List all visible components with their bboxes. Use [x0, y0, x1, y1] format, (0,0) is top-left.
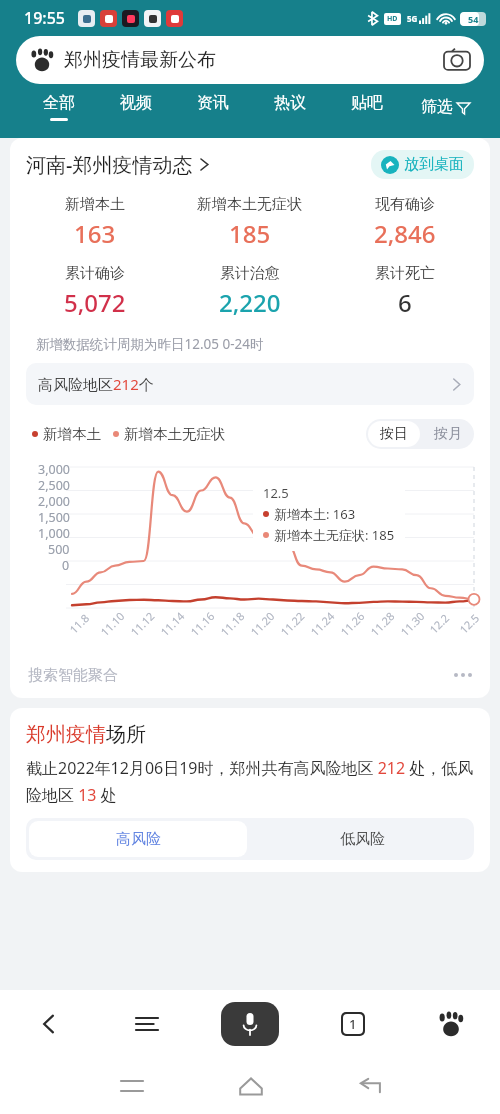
- staticText: 12.5: [263, 484, 289, 502]
- button[interactable]: Menu: [98, 990, 196, 1058]
- staticText: 11.22: [277, 608, 308, 639]
- staticText: 累计死亡: [375, 264, 435, 283]
- button[interactable]: 按日: [368, 421, 420, 447]
- button[interactable]: 新增本土无症状: [172, 195, 327, 250]
- staticText: 1,000: [38, 525, 70, 541]
- staticText: 6: [398, 286, 412, 319]
- button[interactable]: Recent apps: [72, 1058, 191, 1114]
- staticText: 11.16: [187, 608, 218, 639]
- staticText: 3,000: [38, 461, 70, 477]
- button[interactable]: 累计确诊: [18, 264, 172, 319]
- staticText: 筛选: [421, 97, 453, 117]
- staticText: 54: [468, 13, 479, 25]
- staticText: 资讯: [197, 93, 229, 113]
- staticText: 11.10: [97, 608, 128, 639]
- button[interactable]: 高风险地区212个: [26, 363, 474, 405]
- staticText: 163: [74, 217, 116, 250]
- staticText: 0: [62, 557, 70, 573]
- staticText: 新增本土: [43, 425, 101, 443]
- button[interactable]: 放到桌面: [371, 150, 474, 179]
- button[interactable]: 资讯: [174, 84, 251, 130]
- staticText: 高风险地区212个: [38, 374, 451, 394]
- staticText: 12.2: [426, 610, 452, 637]
- button[interactable]: 贴吧: [328, 84, 405, 130]
- staticText: 河南-郑州疫情动态: [26, 151, 193, 178]
- staticText: 2,846: [374, 217, 436, 250]
- staticText: 12.5: [456, 610, 482, 637]
- staticText: 累计确诊: [65, 264, 125, 283]
- staticText: 新增本土: 163: [274, 505, 356, 523]
- button[interactable]: Baidu home: [402, 990, 500, 1058]
- button[interactable]: 累计死亡: [327, 264, 482, 319]
- staticText: 低风险: [340, 830, 385, 849]
- button[interactable]: 现有确诊: [327, 195, 482, 250]
- staticText: 11.18: [217, 608, 248, 639]
- staticText: 5G: [407, 13, 418, 24]
- staticText: 11.26: [337, 608, 368, 639]
- button[interactable]: 搜索智能聚合: [28, 652, 472, 698]
- button[interactable]: 视频: [97, 84, 174, 130]
- staticText: 累计治愈: [220, 264, 280, 283]
- button[interactable]: 累计治愈: [172, 264, 327, 319]
- staticText: 全部: [43, 93, 75, 113]
- staticText: 500: [48, 541, 70, 557]
- staticText: 新增本土无症状: [197, 195, 302, 214]
- staticText: 5,072: [64, 286, 126, 319]
- staticText: 贴吧: [351, 93, 383, 113]
- staticText: 新增本土: [65, 195, 125, 214]
- button[interactable]: Tabs: [304, 990, 402, 1058]
- staticText: 2,220: [219, 286, 281, 319]
- staticText: 11.20: [247, 608, 278, 639]
- staticText: 11.28: [367, 608, 398, 639]
- button[interactable]: 全部: [20, 84, 97, 130]
- button[interactable]: 筛选: [405, 84, 486, 130]
- staticText: 热议: [274, 93, 306, 113]
- staticText: 新增本土无症状: 185: [274, 526, 395, 544]
- button[interactable]: 高风险: [29, 821, 247, 857]
- staticText: 11.14: [157, 608, 188, 639]
- staticText: 1,500: [38, 509, 70, 525]
- button[interactable]: Home: [191, 1058, 310, 1114]
- button[interactable]: Back: [310, 1058, 429, 1114]
- staticText: HD: [387, 14, 398, 24]
- staticText: 2,000: [38, 493, 70, 509]
- staticText: 1: [349, 1015, 357, 1033]
- button[interactable]: 热议: [251, 84, 328, 130]
- staticText: 11.24: [307, 608, 338, 639]
- staticText: 2,500: [38, 477, 70, 493]
- button[interactable]: 低风险: [250, 818, 474, 860]
- staticText: 按月: [434, 425, 462, 443]
- staticText: 放到桌面: [404, 155, 464, 174]
- staticText: 185: [229, 217, 271, 250]
- button[interactable]: Voice search: [221, 1002, 279, 1046]
- button[interactable]: Back: [0, 990, 98, 1058]
- staticText: 19:55: [24, 7, 65, 29]
- button[interactable]: 郑州疫情最新公布: [16, 36, 484, 84]
- staticText: 搜索智能聚合: [28, 666, 454, 685]
- staticText: 11.8: [66, 610, 92, 637]
- staticText: 按日: [380, 425, 408, 443]
- staticText: 11.30: [397, 608, 428, 639]
- button[interactable]: Camera search: [444, 47, 470, 73]
- staticText: 新增本土无症状: [124, 425, 226, 443]
- staticText: 现有确诊: [375, 195, 435, 214]
- staticText: 截止2022年12月06日19时，郑州共有高风险地区 212 处，低风险地区 1…: [26, 757, 474, 806]
- staticText: 新增数据统计周期为昨日12.05 0-24时: [36, 335, 264, 353]
- button[interactable]: 新增本土: [18, 195, 172, 250]
- staticText: 视频: [120, 93, 152, 113]
- staticText: 郑州疫情最新公布: [64, 48, 216, 72]
- button[interactable]: 按月: [422, 425, 474, 443]
- staticText: 高风险: [116, 830, 161, 849]
- button[interactable]: 河南-郑州疫情动态: [26, 151, 371, 178]
- staticText: 郑州疫情场所: [26, 722, 146, 747]
- staticText: 11.12: [127, 608, 158, 639]
